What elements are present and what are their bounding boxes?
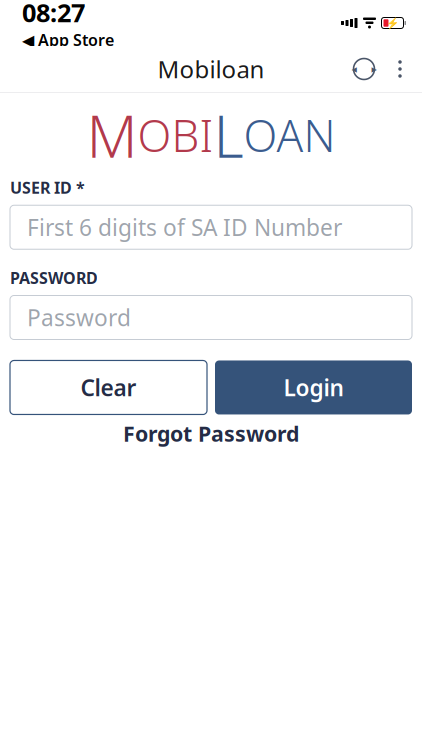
- button[interactable]: More options: [384, 47, 416, 91]
- staticText: ⚡: [386, 17, 399, 29]
- staticText: ◂: [351, 63, 356, 75]
- button[interactable]: Clear: [10, 360, 207, 414]
- staticText: Mobiloan: [157, 53, 264, 85]
- staticText: M: [86, 96, 137, 174]
- staticText: PASSWORD: [10, 267, 98, 288]
- staticText: OBI: [137, 106, 213, 164]
- button[interactable]: Login: [215, 360, 412, 414]
- staticText: OAN: [243, 106, 335, 164]
- staticText: Forgot Password: [123, 419, 299, 448]
- staticText: 08:27: [22, 0, 85, 29]
- staticText: ▸: [371, 63, 376, 75]
- staticText: First 6 digits of SA ID Number: [27, 212, 342, 242]
- staticText: ◀ App Store: [22, 29, 114, 50]
- staticText: L: [213, 96, 243, 174]
- staticText: Password: [27, 302, 131, 332]
- staticText: Clear: [80, 372, 136, 402]
- button[interactable]: Forgot Password: [10, 414, 412, 452]
- button[interactable]: Refresh: [344, 47, 384, 91]
- staticText: USER ID *: [10, 177, 85, 198]
- staticText: Login: [283, 372, 343, 402]
